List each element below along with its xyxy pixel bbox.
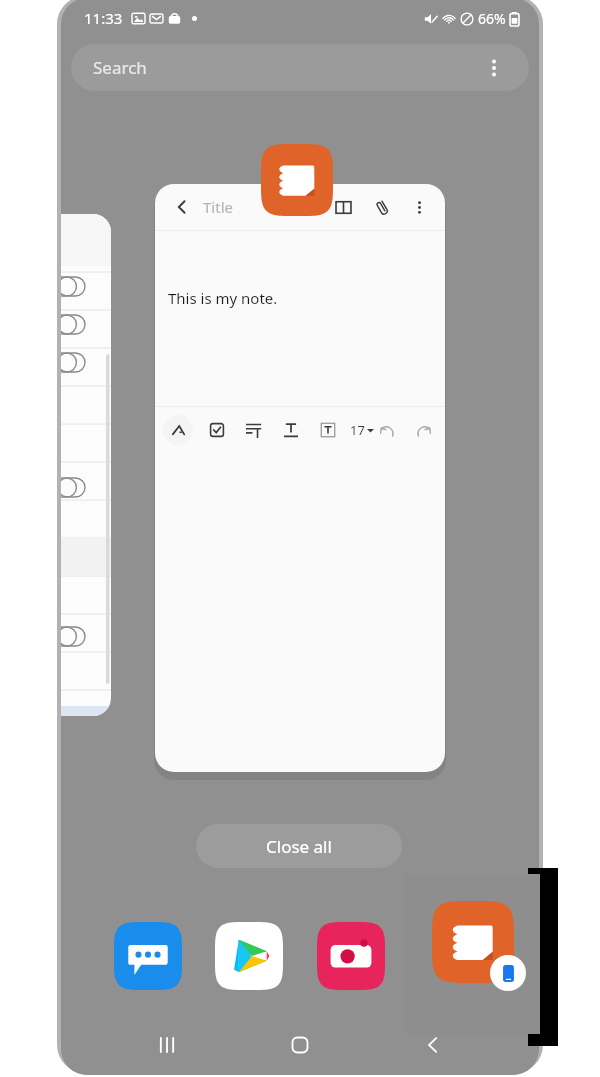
button[interactable]: Close all — [196, 824, 402, 868]
staticText: This is my note. — [168, 288, 278, 308]
button[interactable]: Recents — [140, 1020, 194, 1070]
button[interactable]: Attach — [369, 194, 395, 220]
button[interactable]: Play Store — [214, 921, 284, 991]
staticText: 11:33 — [84, 8, 123, 28]
button[interactable]: Samsung Notes — [261, 144, 333, 216]
button[interactable]: Text style — [278, 417, 304, 443]
button[interactable]: Text box — [315, 417, 341, 443]
button[interactable] — [61, 214, 111, 716]
button[interactable]: Reading mode — [330, 194, 356, 220]
staticText: 17 — [350, 421, 365, 439]
staticText: 66% — [478, 9, 506, 28]
button[interactable]: Paragraph — [241, 417, 267, 443]
button[interactable]: More options — [407, 195, 431, 219]
button[interactable]: Undo — [375, 418, 399, 442]
button[interactable]: Samsung Notes pop-up view — [405, 874, 540, 1034]
button[interactable]: Checklist — [204, 417, 230, 443]
button[interactable]: Back — [155, 184, 445, 772]
button[interactable]: Camera — [316, 921, 386, 991]
button[interactable]: Back — [169, 194, 195, 220]
button[interactable]: Redo — [411, 418, 435, 442]
button[interactable]: Pen — [163, 415, 193, 445]
staticText: Close all — [266, 835, 332, 858]
button[interactable]: Samsung Notes — [417, 921, 487, 991]
button[interactable]: Home — [273, 1020, 327, 1070]
button[interactable]: Back — [406, 1020, 460, 1070]
button[interactable]: More options — [481, 55, 507, 81]
button[interactable]: Messages — [113, 921, 183, 991]
staticText: Title — [203, 197, 233, 217]
button[interactable]: 17 — [350, 421, 374, 439]
button[interactable]: Search — [71, 44, 529, 91]
staticText: Search — [93, 56, 147, 79]
